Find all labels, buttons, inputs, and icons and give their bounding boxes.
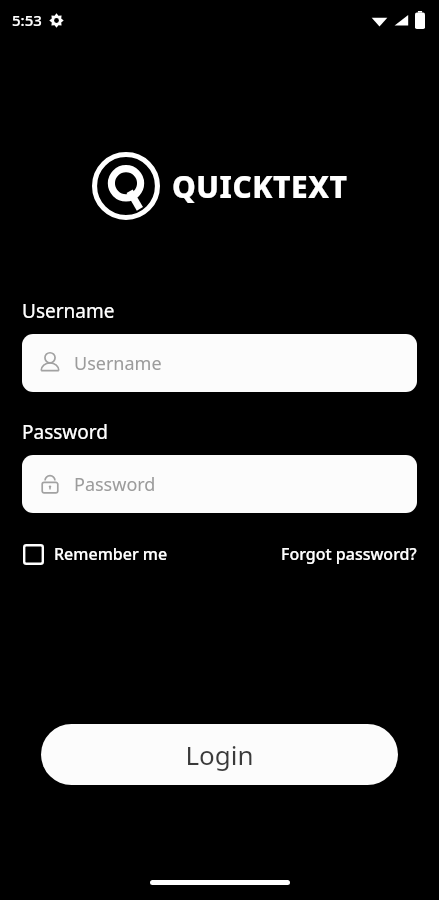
staticText: Remember me — [54, 543, 168, 565]
staticText: Password — [22, 419, 108, 445]
staticText: 5:53 — [12, 10, 42, 30]
staticText: QUICKTEXT — [172, 166, 348, 207]
other: Username — [37, 350, 63, 376]
staticText: Password — [74, 472, 156, 497]
staticText: Forgot password? — [281, 543, 417, 565]
staticText: Username — [74, 351, 162, 376]
staticText: Username — [22, 298, 115, 324]
staticText: Login — [185, 737, 254, 772]
other: Password — [37, 471, 63, 497]
button[interactable]: Password — [22, 455, 417, 513]
button[interactable]: Username — [22, 334, 417, 392]
button[interactable]: Login — [41, 724, 398, 785]
button[interactable]: Remember me — [22, 539, 169, 569]
button[interactable]: Forgot password? — [281, 539, 417, 569]
